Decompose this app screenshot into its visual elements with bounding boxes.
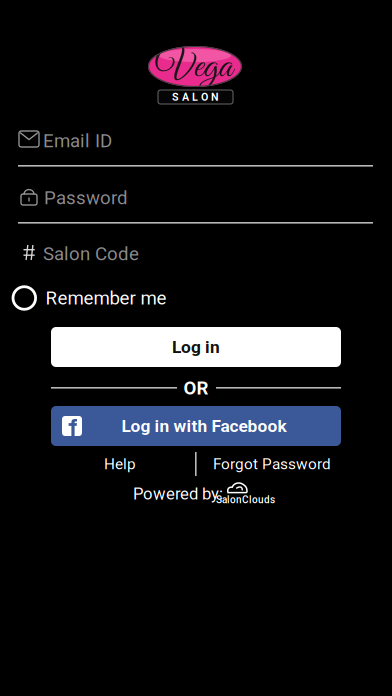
staticText: Log in — [172, 337, 220, 357]
staticText: Salon Code — [43, 243, 139, 265]
staticText: Powered by: — [133, 484, 223, 503]
button[interactable]: Forgot Password — [197, 452, 347, 476]
button[interactable]: Log in with Facebook — [51, 406, 341, 446]
staticText: OR — [183, 377, 208, 399]
staticText: Help — [104, 455, 136, 473]
staticText: Password — [44, 187, 128, 209]
staticText: SalonClouds — [216, 494, 275, 506]
staticText: Vega — [155, 43, 232, 92]
button[interactable]: Remember me — [13, 283, 233, 313]
staticText: Forgot Password — [213, 455, 331, 473]
button[interactable]: Log in — [51, 327, 341, 367]
button[interactable]: Help — [77, 452, 163, 476]
staticText: S A L O N — [172, 91, 219, 103]
staticText: Log in with Facebook — [121, 416, 286, 436]
staticText: Email ID — [43, 130, 112, 152]
staticText: Remember me — [46, 287, 167, 309]
